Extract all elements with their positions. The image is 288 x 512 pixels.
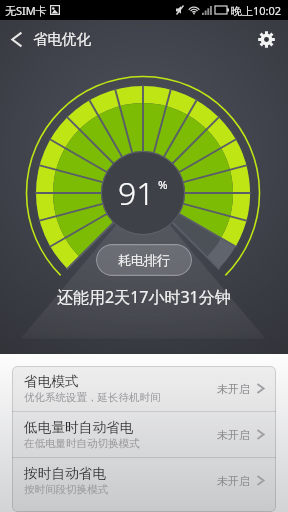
button[interactable]: Back: [0, 23, 33, 56]
staticText: 未开启: [217, 382, 250, 396]
staticText: 按时自动省电: [24, 465, 107, 482]
staticText: 优化系统设置，延长待机时间: [24, 391, 161, 404]
staticText: 省电模式: [24, 373, 79, 390]
button[interactable]: Settings: [244, 20, 288, 58]
staticText: 省电优化: [33, 30, 91, 48]
staticText: 未开启: [217, 428, 250, 442]
staticText: 在低电量时自动切换模式: [24, 437, 140, 450]
staticText: 未开启: [217, 474, 250, 488]
staticText: %: [158, 177, 168, 193]
button[interactable]: 耗电排行: [96, 244, 192, 276]
staticText: 91: [118, 171, 155, 215]
button[interactable]: 省电模式: [12, 366, 276, 411]
staticText: 按时间段切换模式: [24, 483, 108, 496]
staticText: 还能用2天17小时31分钟: [57, 286, 231, 308]
button[interactable]: 按时自动省电: [12, 458, 276, 503]
staticText: 无SIM卡: [5, 3, 47, 18]
staticText: 晚上10:02: [231, 3, 282, 18]
button[interactable]: 低电量时自动省电: [12, 412, 276, 457]
staticText: 低电量时自动省电: [24, 419, 134, 436]
staticText: 耗电排行: [118, 252, 170, 268]
